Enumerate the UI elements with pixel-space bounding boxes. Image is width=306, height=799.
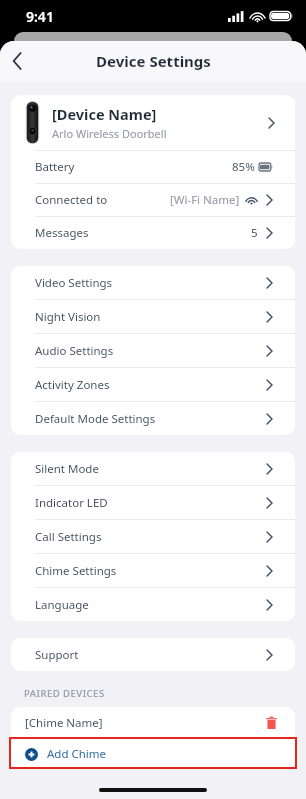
staticText: Support (35, 647, 266, 663)
button[interactable]: Add Chime (11, 739, 295, 769)
button[interactable]: Activity Zones (11, 368, 295, 401)
button[interactable]: Delete chime (261, 713, 281, 733)
staticText: Device Settings (96, 51, 211, 71)
button[interactable]: Language (11, 588, 295, 621)
staticText: Battery (35, 159, 232, 175)
staticText: Default Mode Settings (35, 411, 266, 427)
button[interactable]: Night Vision (11, 300, 295, 333)
staticText: Night Vision (35, 309, 266, 325)
staticText: Call Settings (35, 529, 266, 545)
button[interactable]: Battery (11, 151, 295, 183)
staticText: Arlo Wireless Doorbell (52, 126, 167, 141)
button[interactable]: Video Settings (11, 266, 295, 299)
button[interactable]: Connected to (11, 184, 295, 216)
staticText: Messages (35, 225, 251, 241)
button[interactable]: Indicator LED (11, 486, 295, 519)
staticText: Video Settings (35, 275, 266, 291)
button[interactable]: [Chime Name] (11, 707, 295, 739)
staticText: [Chime Name] (25, 715, 261, 731)
staticText: 85% (232, 159, 255, 175)
button[interactable]: Default Mode Settings (11, 402, 295, 435)
button[interactable]: Back (0, 44, 34, 78)
staticText: Connected to (35, 192, 170, 208)
button[interactable]: Chime Settings (11, 554, 295, 587)
staticText: Activity Zones (35, 377, 266, 393)
staticText: 5 (251, 225, 258, 241)
staticText: Language (35, 597, 266, 613)
button[interactable]: Audio Settings (11, 334, 295, 367)
staticText: Chime Settings (35, 563, 266, 579)
staticText: Add Chime (47, 746, 107, 762)
staticText: Silent Mode (35, 461, 266, 477)
staticText: [Wi-Fi Name] (170, 192, 240, 208)
button[interactable]: Messages (11, 217, 295, 249)
button[interactable]: Support (11, 638, 295, 671)
button[interactable]: Call Settings (11, 520, 295, 553)
staticText: PAIRED DEVICES (24, 687, 105, 700)
staticText: Indicator LED (35, 495, 266, 511)
staticText: 9:41 (26, 7, 54, 26)
button[interactable]: Silent Mode (11, 452, 295, 485)
staticText: [Device Name] (52, 104, 157, 124)
button[interactable]: [Device Name] (11, 95, 295, 150)
staticText: Audio Settings (35, 343, 266, 359)
